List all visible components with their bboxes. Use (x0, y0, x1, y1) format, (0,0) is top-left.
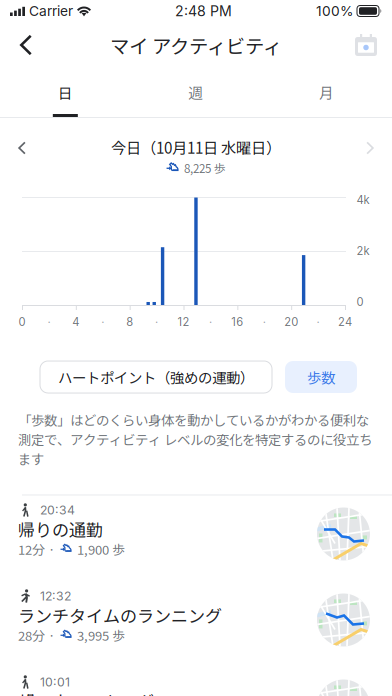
staticText: 2:48 PM (175, 2, 232, 19)
button[interactable]: ハートポイント（強めの運動） (40, 361, 272, 393)
staticText: 10:01 (40, 675, 70, 689)
staticText: 3,995 歩 (77, 625, 125, 644)
staticText: 朝のウォーキング (18, 689, 154, 696)
staticText: 20:34 (40, 503, 75, 517)
staticText: 4k (356, 193, 369, 207)
staticText: 100% (316, 3, 353, 19)
staticText: 20 (284, 315, 298, 329)
staticText: · (155, 315, 158, 329)
staticText: 週 (188, 82, 203, 103)
staticText: 歩数 (307, 367, 335, 387)
staticText: 月 (319, 82, 334, 103)
staticText: 0 (18, 315, 25, 329)
button[interactable]: Previous day (0, 126, 44, 170)
staticText: 8 (126, 315, 133, 329)
staticText: 12:32 (40, 589, 71, 603)
button[interactable]: 歩数 (285, 361, 357, 393)
staticText: ランチタイムのランニング (18, 603, 222, 627)
staticText: 12分 · (18, 539, 55, 558)
button[interactable]: Calendar (340, 22, 392, 68)
staticText: 今日（10月11日 水曜日） (111, 136, 281, 158)
staticText: 12 (177, 315, 189, 329)
button[interactable]: Next day (348, 126, 392, 170)
staticText: 2k (356, 244, 369, 258)
staticText: 24 (338, 315, 352, 329)
staticText: 0 (356, 295, 363, 309)
staticText: · (209, 315, 212, 329)
staticText: ハートポイント（強めの運動） (58, 367, 254, 387)
button[interactable]: 週 (131, 68, 261, 117)
button[interactable]: Back (0, 22, 52, 68)
button[interactable]: 12:32 (0, 588, 392, 674)
button[interactable]: 日 (0, 68, 131, 117)
staticText: 1,900 歩 (77, 539, 125, 558)
staticText: 帰りの通勤 (18, 517, 103, 541)
staticText: · (263, 315, 266, 329)
button[interactable]: 月 (261, 68, 392, 117)
staticText: · (47, 315, 50, 329)
button[interactable]: 20:34 (0, 502, 392, 588)
staticText: 日 (58, 82, 73, 103)
button[interactable]: 10:01 (0, 674, 392, 696)
staticText: Carrier (29, 3, 73, 19)
staticText: · (317, 315, 320, 329)
staticText: 28分 · (18, 625, 55, 644)
staticText: 4 (72, 315, 79, 329)
staticText: マイ アクティビティ (110, 31, 282, 59)
staticText: · (101, 315, 104, 329)
staticText: 16 (231, 315, 243, 329)
staticText: 「歩数」はどのくらい身体を動かしているかがわかる便利な測定で、アクティビティ レ… (18, 410, 372, 468)
staticText: 8,225 歩 (184, 160, 226, 176)
